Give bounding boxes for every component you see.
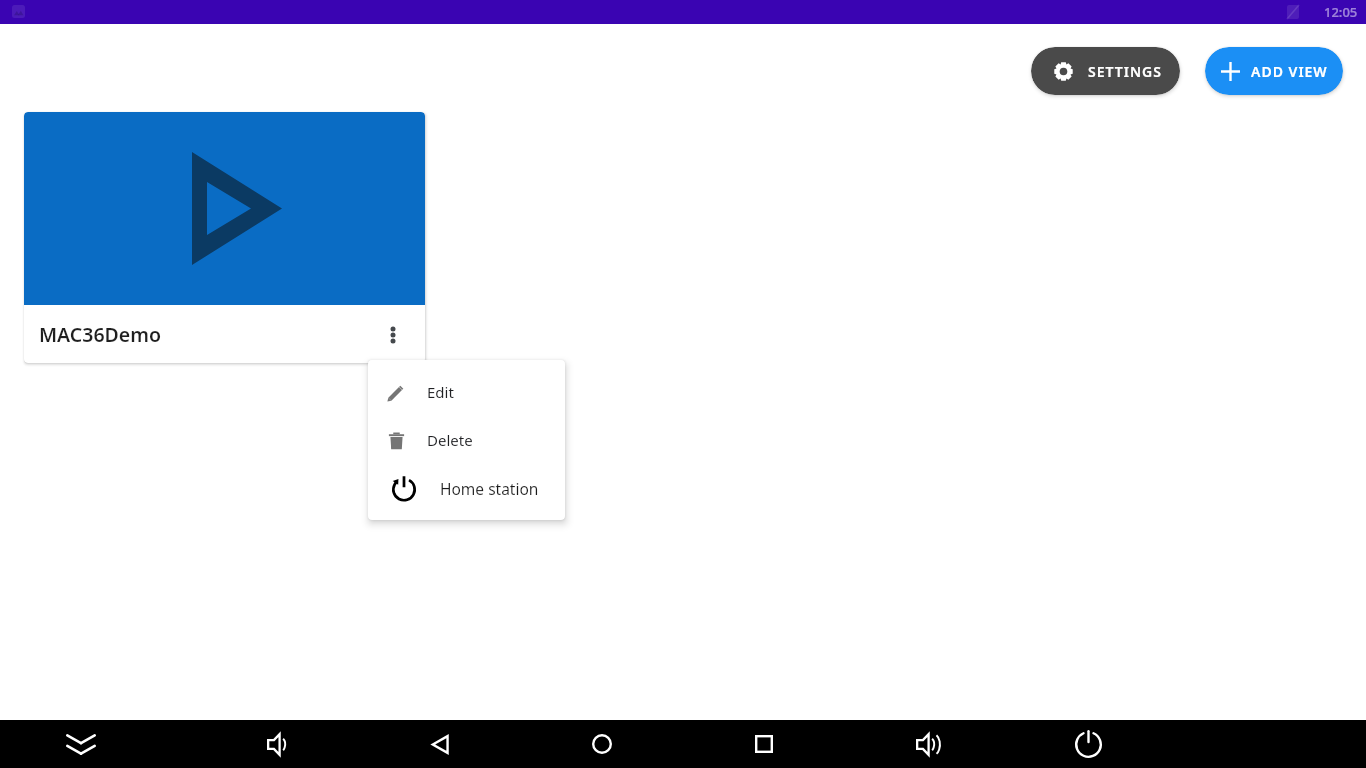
- button[interactable]: Power: [1064, 720, 1112, 768]
- button[interactable]: ADD VIEW: [1205, 47, 1343, 95]
- staticText: Delete: [427, 430, 473, 450]
- staticText: 12:05: [1324, 3, 1358, 21]
- button[interactable]: MAC36Demo: [24, 112, 425, 363]
- button[interactable]: More options: [375, 317, 411, 353]
- staticText: Edit: [427, 382, 454, 402]
- button[interactable]: Delete: [368, 416, 565, 464]
- staticText: ADD VIEW: [1251, 62, 1328, 81]
- button[interactable]: Back: [416, 720, 464, 768]
- button[interactable]: Home station: [368, 464, 565, 512]
- button[interactable]: Volume down: [253, 720, 301, 768]
- staticText: SETTINGS: [1088, 62, 1162, 81]
- button[interactable]: Recents: [740, 720, 788, 768]
- button[interactable]: SETTINGS: [1031, 47, 1180, 95]
- staticText: MAC36Demo: [39, 321, 162, 348]
- button[interactable]: Volume up: [902, 720, 950, 768]
- staticText: Home station: [440, 478, 539, 499]
- button[interactable]: Collapse: [57, 720, 105, 768]
- button[interactable]: Home: [578, 720, 626, 768]
- button[interactable]: Edit: [368, 368, 565, 416]
